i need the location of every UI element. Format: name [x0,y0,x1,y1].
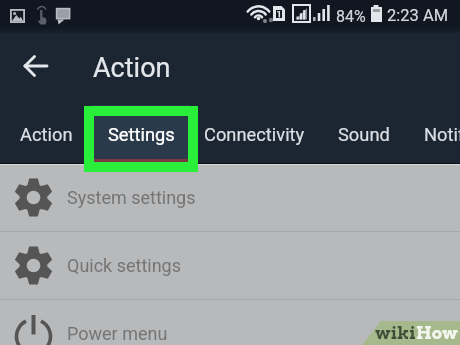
staticText: Sound [338,124,390,145]
staticText: Settings [108,124,175,145]
staticText: Power menu [67,323,168,344]
staticText: wiki [375,323,416,344]
staticText: Action [93,52,171,84]
staticText: How [416,323,458,344]
button[interactable]: Action [0,105,92,164]
button[interactable]: Back [12,51,60,99]
staticText: Action [20,124,73,145]
staticText: Quick settings [67,255,182,276]
staticText: 2:23 AM [387,6,449,25]
button[interactable]: Sound [318,105,410,164]
button[interactable]: Connectivity [190,105,318,164]
staticText: Connectivity [204,124,305,145]
staticText: System settings [67,187,196,208]
button[interactable]: Settings [92,105,190,164]
button[interactable]: Notifications [410,105,460,164]
button[interactable]: System settings [0,164,460,231]
staticText: Notifications [424,124,460,145]
button[interactable]: Power menu [0,300,460,345]
button[interactable]: Quick settings [0,232,460,299]
staticText: 84% [336,7,366,26]
